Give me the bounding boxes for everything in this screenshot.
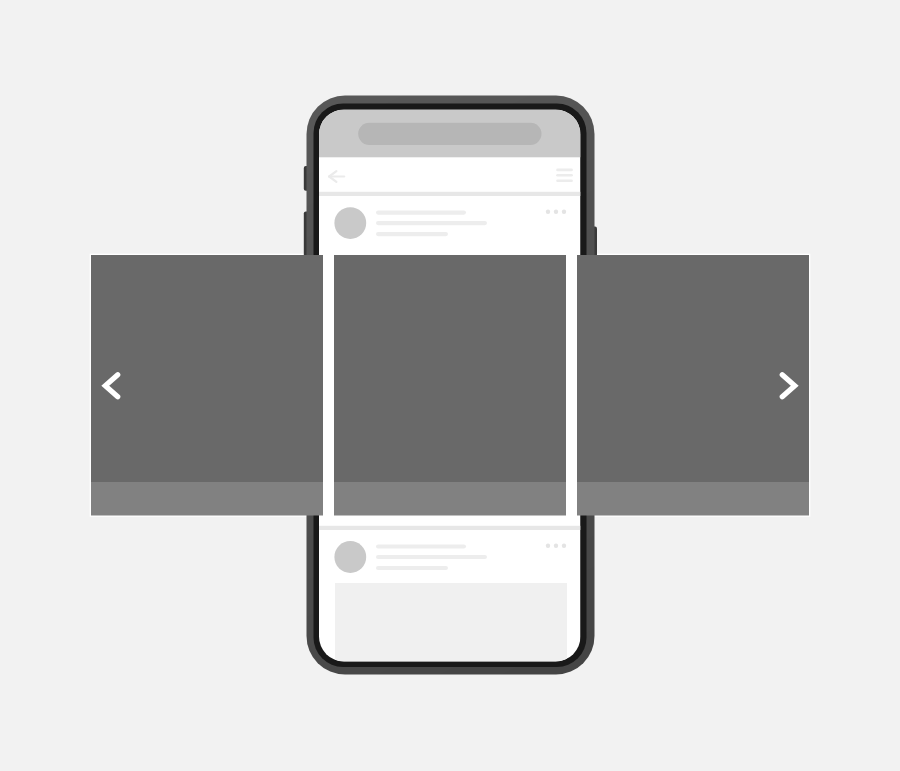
- button[interactable]: More options: [540, 533, 574, 559]
- button[interactable]: [319, 196, 581, 253]
- button[interactable]: [319, 530, 581, 583]
- button[interactable]: Menu: [546, 160, 580, 192]
- button[interactable]: Next image: [577, 255, 809, 516]
- button[interactable]: Open image: [334, 255, 566, 516]
- button[interactable]: Back: [319, 160, 355, 192]
- button[interactable]: More options: [540, 199, 574, 225]
- button[interactable]: Previous image: [91, 255, 323, 516]
